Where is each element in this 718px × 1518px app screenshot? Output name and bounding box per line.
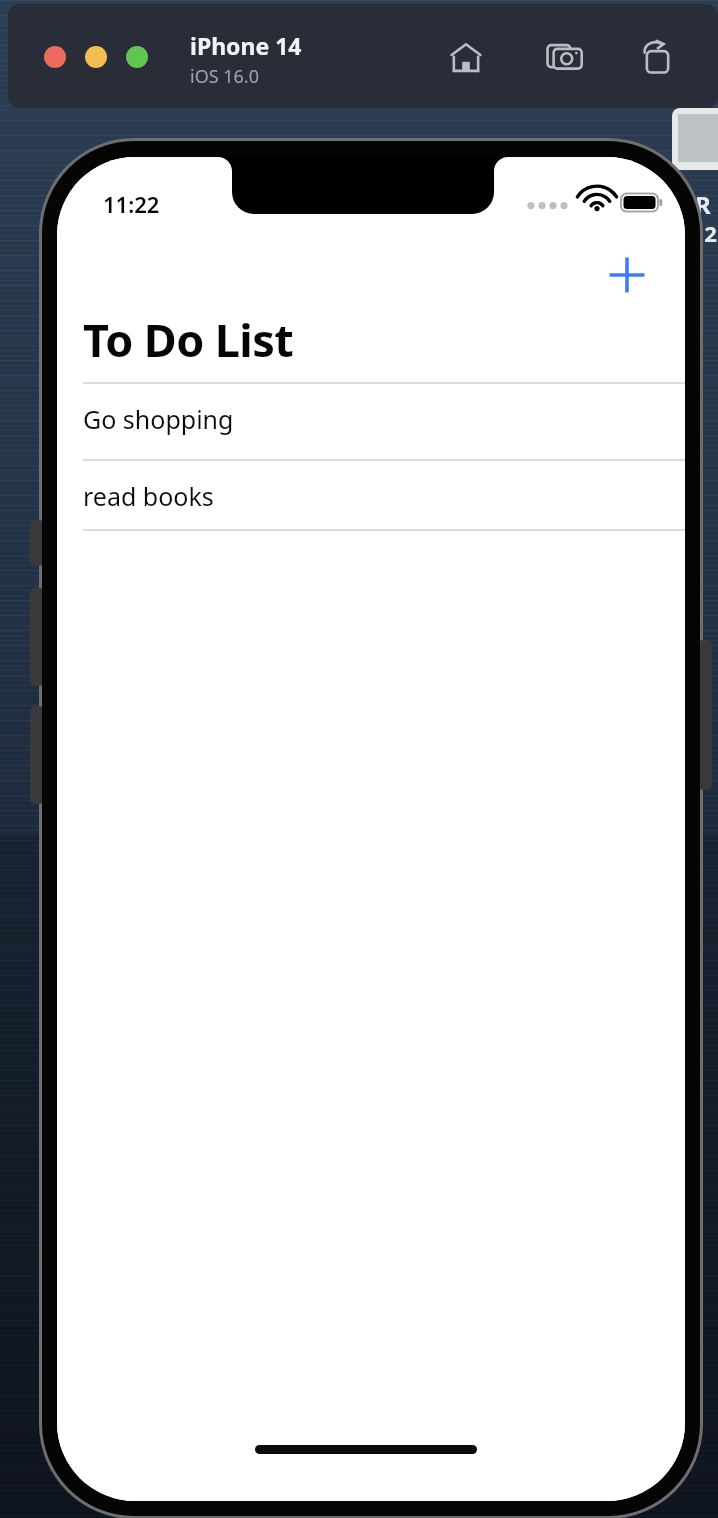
button[interactable]: Screenshot [539,32,591,84]
button[interactable]: Go shopping [57,382,685,455]
staticText: R [695,188,711,221]
button[interactable]: Close [44,46,66,68]
staticText: .2 [698,218,717,248]
button[interactable]: Home [440,32,492,84]
button[interactable]: Rotate device [630,32,682,84]
button[interactable]: Maximise [126,46,148,68]
button[interactable]: read books [57,459,685,532]
staticText: iOS 16.0 [190,64,259,89]
staticText: 11:22 [103,189,160,219]
staticText: Go shopping [83,402,234,436]
button[interactable]: Add item [599,247,655,303]
staticText: read books [83,479,214,513]
staticText: iPhone 14 [190,30,302,61]
staticText: To Do List [83,309,294,370]
button[interactable]: Minimise [85,46,107,68]
